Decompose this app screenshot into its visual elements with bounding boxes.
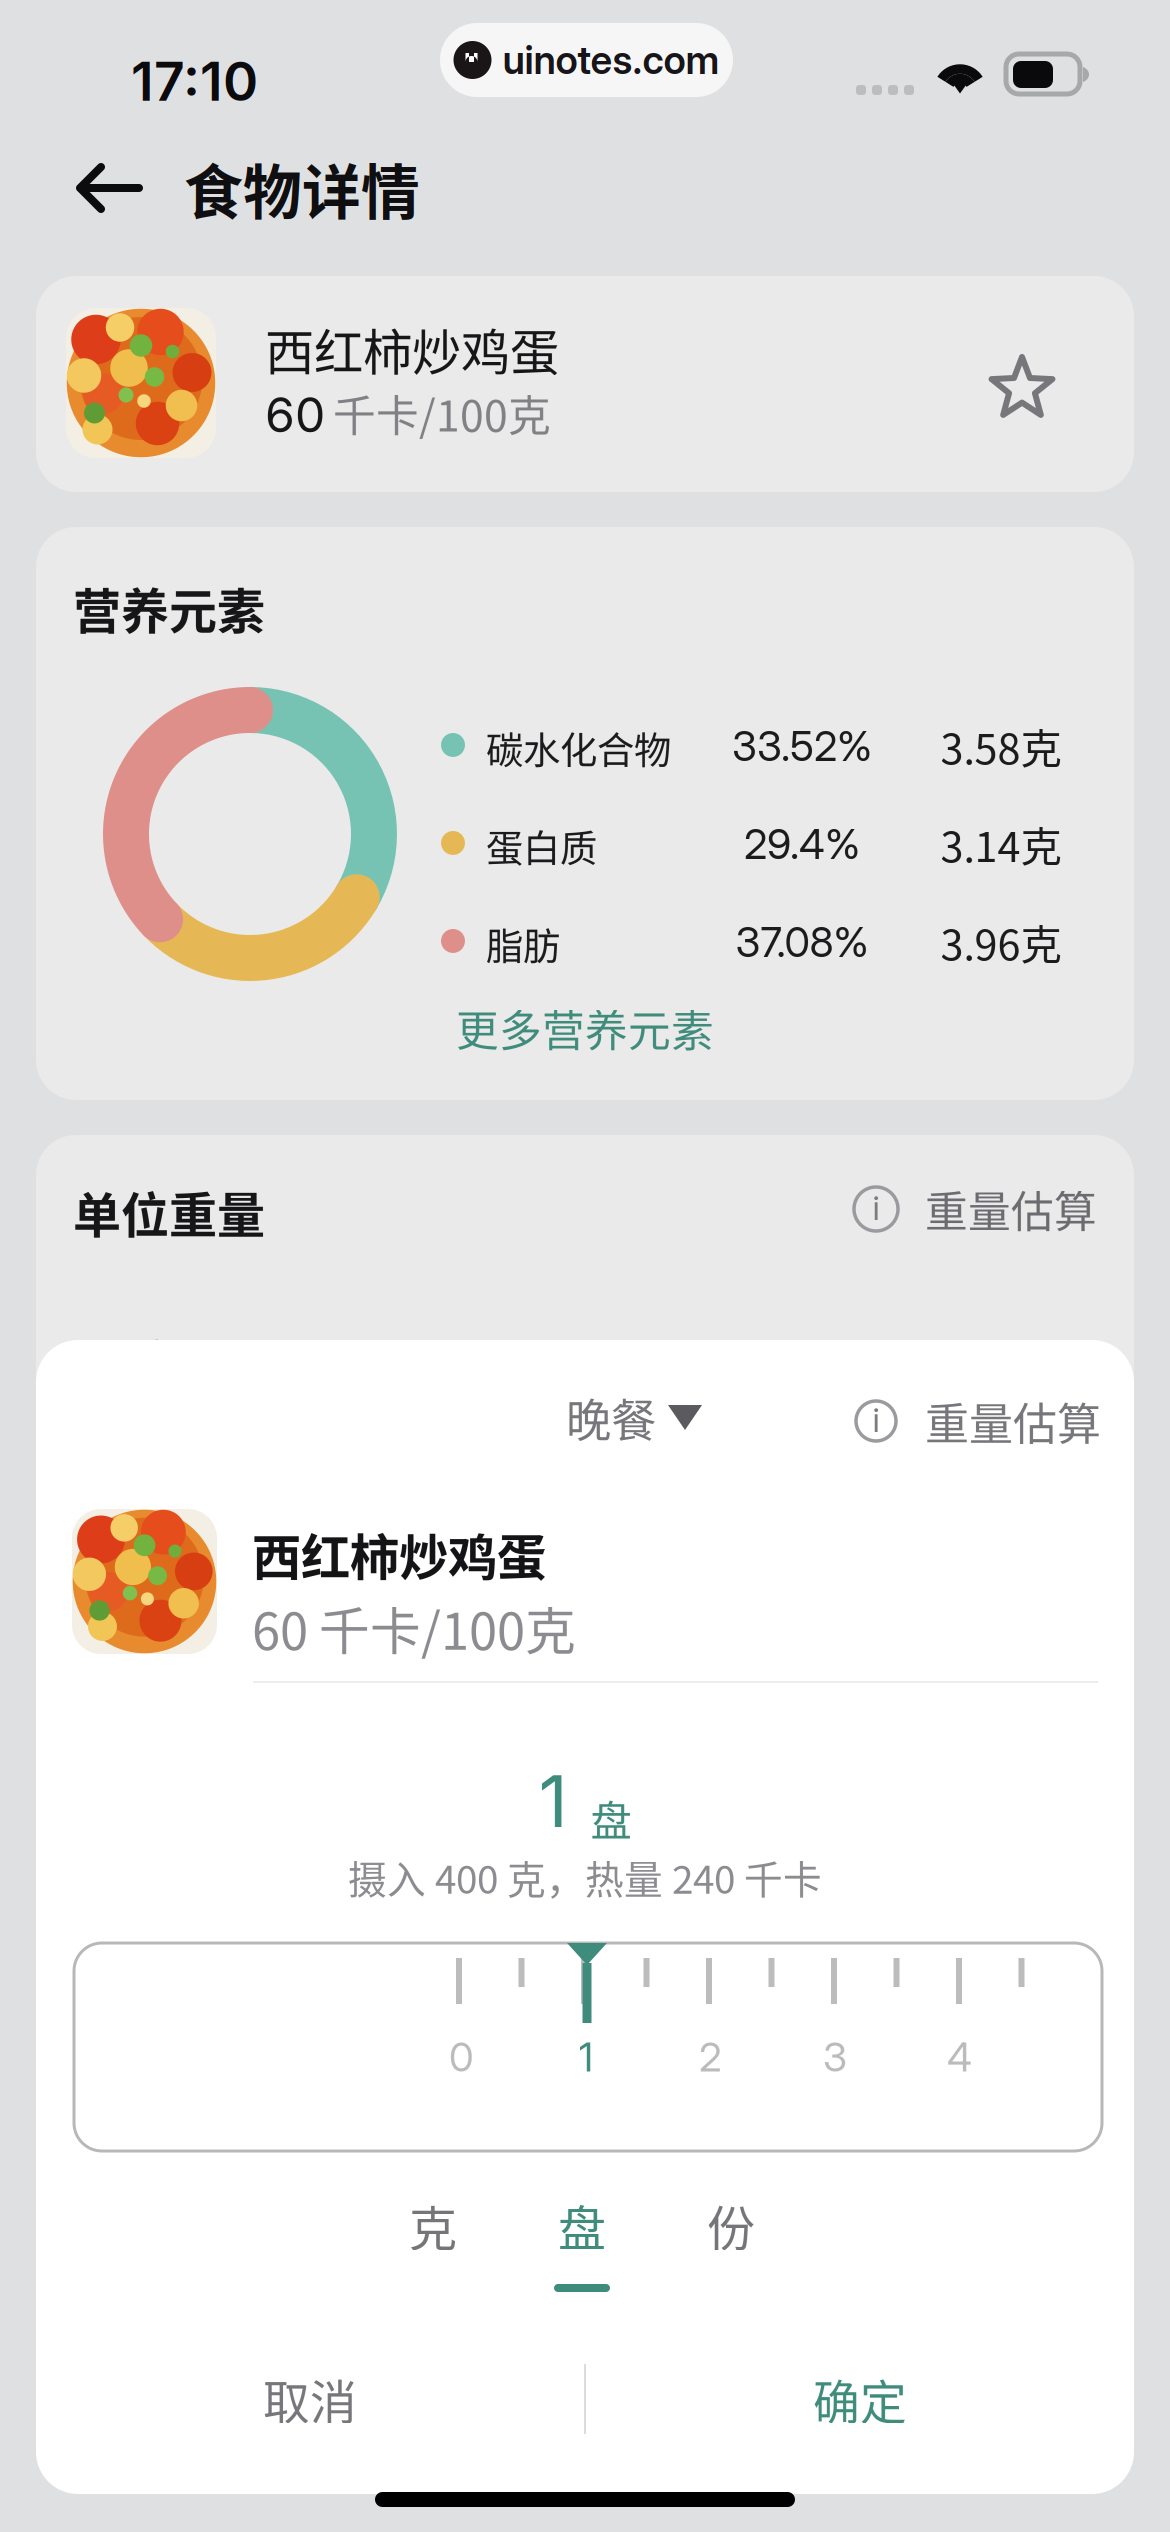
staticText: 西红柿炒鸡蛋 xyxy=(265,313,559,384)
staticText: 29.4% xyxy=(744,819,860,869)
button[interactable]: 更多营养元素 xyxy=(36,985,1134,1071)
staticText: 热量 xyxy=(1008,1327,1094,1389)
button[interactable]: 份 xyxy=(656,2196,805,2318)
staticText: 33.52% xyxy=(732,721,872,771)
staticText: 更多营养元素 xyxy=(456,997,714,1059)
button[interactable]: 西红柿炒鸡蛋 xyxy=(36,276,1134,492)
button[interactable]: i xyxy=(854,1177,1097,1241)
staticText: 克 xyxy=(409,2190,457,2260)
staticText: 碳水化合物 xyxy=(486,721,671,775)
staticText: 份 xyxy=(707,2190,755,2260)
staticText: 1 xyxy=(538,1757,567,1844)
button[interactable]: 盘 xyxy=(507,2196,656,2318)
staticText: uinotes.com xyxy=(502,37,719,83)
button[interactable]: 克 xyxy=(358,2196,507,2318)
staticText: 蛋白质 xyxy=(486,819,597,873)
button[interactable]: 取消 xyxy=(36,2329,584,2469)
staticText: 37.08% xyxy=(735,917,868,967)
staticText: 西红柿炒鸡蛋 xyxy=(252,1518,546,1589)
staticText: i xyxy=(872,1400,879,1440)
staticText: 3 xyxy=(823,2033,847,2081)
staticText: 2 xyxy=(699,2033,722,2081)
button[interactable]: Back xyxy=(75,162,143,214)
staticText: 盘 xyxy=(590,1788,631,1848)
staticText: 3.14克 xyxy=(940,814,1061,874)
staticText: 重量估算 xyxy=(925,1178,1097,1240)
button[interactable]: i xyxy=(856,1389,1101,1453)
staticText: 脂肪 xyxy=(486,917,560,971)
staticText: 0 xyxy=(449,2033,474,2081)
staticText: 17:10 xyxy=(131,49,258,113)
staticText: 千卡/100克 xyxy=(333,382,551,444)
staticText: 3.96克 xyxy=(940,912,1061,972)
staticText: 食物详情 xyxy=(184,146,420,231)
staticText: 营养元素 xyxy=(73,573,265,642)
staticText: 3.58克 xyxy=(940,716,1061,776)
staticText: 单位 xyxy=(87,1327,173,1389)
staticText: 摄入 400 克，热量 240 千卡 xyxy=(348,1849,822,1905)
staticText: 重量估算 xyxy=(925,1389,1101,1453)
staticText: 60 千卡/100克 xyxy=(252,1591,576,1664)
staticText: 60 xyxy=(265,386,325,444)
staticText: 盘 xyxy=(558,2190,606,2260)
staticText: 单位重量 xyxy=(73,1177,265,1246)
button[interactable]: 确定 xyxy=(586,2329,1134,2469)
staticText: 晚餐 xyxy=(566,1385,656,1450)
staticText: i xyxy=(872,1188,879,1228)
staticText: 重量 xyxy=(531,1327,617,1389)
staticText: 4 xyxy=(947,2033,972,2081)
staticText: 确定 xyxy=(813,2365,907,2433)
staticText: 1 xyxy=(578,2033,593,2081)
button[interactable]: 晚餐 xyxy=(566,1397,702,1438)
staticText: 取消 xyxy=(263,2365,357,2433)
